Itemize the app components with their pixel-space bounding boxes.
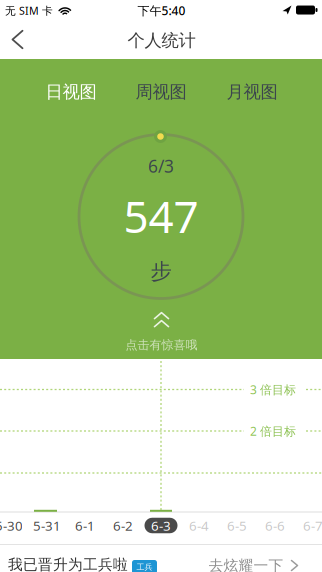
staticText: 无 SIM 卡 xyxy=(5,3,53,18)
button[interactable]: 6-3 xyxy=(144,517,177,534)
staticText: 点击有惊喜哦 xyxy=(125,338,197,352)
staticText: 步 xyxy=(150,258,171,285)
button[interactable]: 月视图 xyxy=(218,75,285,109)
staticText: 去炫耀一下 xyxy=(208,556,283,572)
staticText: 547 xyxy=(123,187,198,245)
staticText: 3 倍目标 xyxy=(250,381,296,397)
button[interactable]: 5-31 xyxy=(33,517,61,534)
staticText: 下午5:40 xyxy=(137,2,185,18)
button[interactable]: 6-1 xyxy=(75,517,95,534)
button[interactable]: 6-2 xyxy=(113,517,133,534)
staticText: 6-2 xyxy=(113,517,133,534)
staticText: 我已晋升为工兵啦 xyxy=(8,555,128,572)
staticText: 周视图 xyxy=(135,81,186,103)
staticText: 6/3 xyxy=(148,154,174,177)
button[interactable]: 去炫耀一下 xyxy=(208,556,297,572)
staticText: 工兵 xyxy=(136,562,152,572)
button[interactable]: 6-6 xyxy=(265,517,285,534)
staticText: 6-1 xyxy=(75,517,95,534)
staticText: 月视图 xyxy=(226,81,277,103)
button[interactable]: 我已晋升为工兵啦 xyxy=(0,545,170,572)
button[interactable]: Back xyxy=(2,21,32,58)
button[interactable]: 6-7 xyxy=(303,517,322,534)
staticText: 日视图 xyxy=(45,81,96,103)
staticText: 5-31 xyxy=(33,517,61,534)
staticText: 6-3 xyxy=(151,517,171,534)
staticText: 个人统计 xyxy=(127,30,195,51)
staticText: 5-30 xyxy=(0,517,23,534)
staticText: 2 倍目标 xyxy=(250,423,296,439)
staticText: 6-4 xyxy=(189,517,209,534)
staticText: 6-7 xyxy=(303,517,322,534)
button[interactable]: 周视图 xyxy=(127,75,194,109)
button[interactable]: 5-30 xyxy=(0,517,23,534)
staticText: 6-5 xyxy=(227,517,247,534)
button[interactable]: 日视图 xyxy=(37,75,104,109)
button[interactable]: 6-4 xyxy=(189,517,209,534)
button[interactable]: 6-5 xyxy=(227,517,247,534)
staticText: 6-6 xyxy=(265,517,285,534)
button[interactable]: 点击有惊喜哦 xyxy=(125,313,197,352)
